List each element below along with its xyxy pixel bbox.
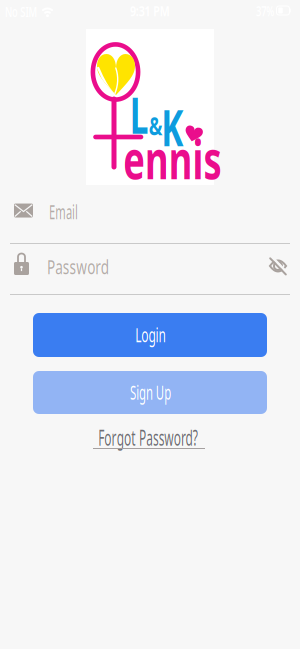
staticText: Password (32, 253, 123, 280)
staticText: Email (38, 198, 89, 225)
staticText: & (146, 108, 165, 143)
button[interactable]: Login (33, 313, 267, 357)
staticText: ennis (100, 122, 245, 195)
button[interactable]: Sign Up (33, 371, 267, 414)
staticText: Forgot Password? (59, 423, 237, 452)
button[interactable] (263, 252, 293, 280)
staticText: L (125, 79, 153, 148)
button[interactable]: Password (10, 246, 290, 296)
staticText: Sign Up (114, 379, 186, 405)
button[interactable]: Forgot Password? (88, 426, 208, 452)
button[interactable]: Email (10, 196, 290, 244)
staticText: Login (125, 321, 176, 348)
staticText: K (155, 92, 189, 161)
